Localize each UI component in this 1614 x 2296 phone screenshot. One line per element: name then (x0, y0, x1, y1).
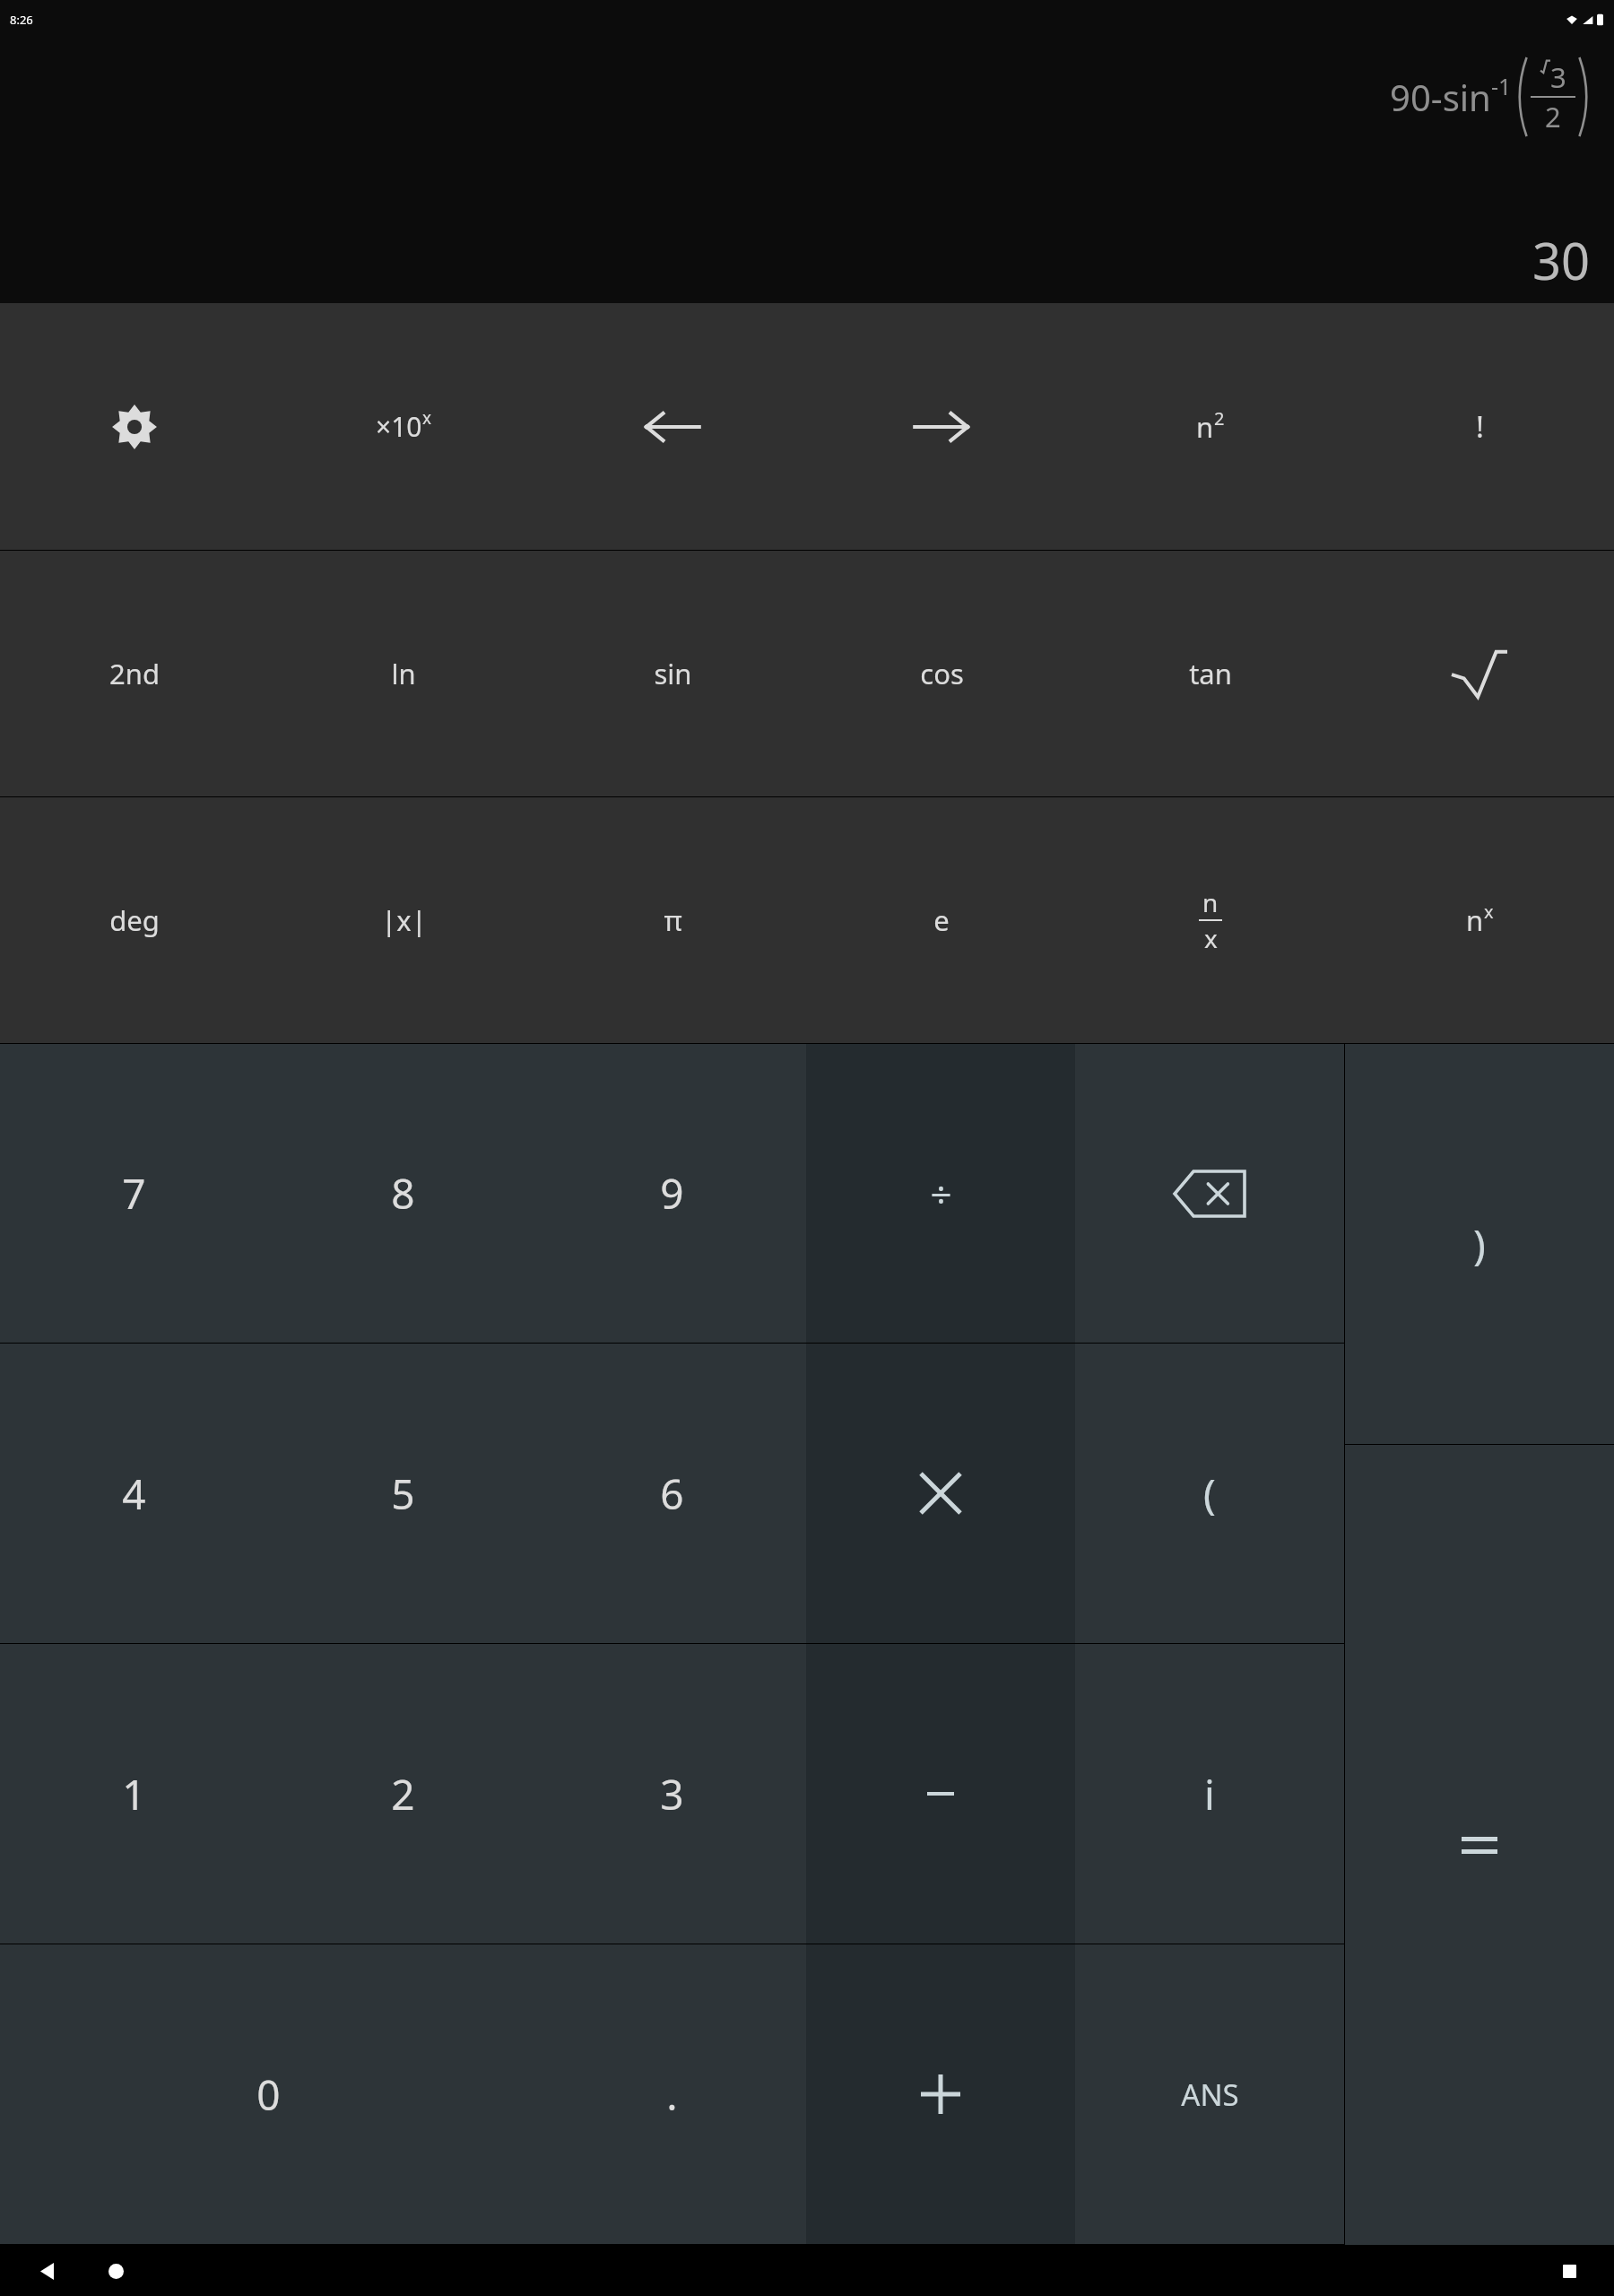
button[interactable]: . (537, 1944, 806, 2244)
button[interactable]: n (1076, 303, 1345, 550)
staticText: ANS (1181, 2074, 1239, 2115)
staticText: 7 (122, 1165, 146, 1222)
button[interactable]: n (1345, 797, 1614, 1043)
button[interactable]: 0 (0, 1944, 537, 2244)
staticText: 5 (391, 1465, 415, 1522)
button[interactable]: ANS (1075, 1944, 1344, 2244)
staticText: x (1484, 900, 1494, 924)
staticText: 0 (256, 2066, 281, 2123)
button[interactable]: ÷ (806, 1044, 1075, 1343)
button[interactable]: |x| (269, 797, 538, 1043)
button[interactable]: 8 (268, 1044, 537, 1343)
button[interactable]: Backspace (1075, 1044, 1344, 1343)
button[interactable]: Equals (1345, 1445, 1614, 2245)
button[interactable]: tan (1076, 551, 1345, 796)
staticText: ln (391, 655, 416, 692)
button[interactable]: 2 (268, 1644, 537, 1944)
staticText: ( (1203, 1465, 1216, 1522)
button[interactable]: ( (1075, 1344, 1344, 1643)
staticText: 3 (660, 1766, 684, 1822)
button[interactable]: deg (0, 797, 269, 1043)
button[interactable]: Plus (806, 1944, 1075, 2244)
staticText: 2 (391, 1766, 415, 1822)
button[interactable]: ! (1345, 303, 1614, 550)
button[interactable]: Move cursor right (807, 303, 1076, 550)
staticText: 2 (1545, 98, 1561, 135)
staticText: 2nd (109, 655, 160, 692)
staticText: 9 (660, 1165, 684, 1222)
button[interactable]: 4 (0, 1344, 268, 1643)
button[interactable]: Recent apps (1554, 2256, 1584, 2286)
button[interactable]: Multiply (806, 1344, 1075, 1643)
staticText: sin (654, 655, 692, 692)
button[interactable]: 2nd (0, 551, 269, 796)
staticText: ×10 (376, 408, 422, 445)
staticText: cos (920, 655, 964, 692)
staticText: 8:26 (10, 12, 33, 28)
staticText: n (1466, 901, 1484, 939)
button[interactable]: ) (1345, 1044, 1614, 1444)
button[interactable]: 3 (537, 1644, 806, 1944)
staticText: ) (1473, 1216, 1486, 1273)
button[interactable]: 9 (537, 1044, 806, 1343)
button[interactable]: 5 (268, 1344, 537, 1643)
staticText: 30 (1532, 226, 1591, 294)
staticText: e (933, 901, 950, 939)
staticText: x (1204, 921, 1218, 955)
button[interactable]: sin (538, 551, 807, 796)
button[interactable]: i (1075, 1644, 1344, 1944)
staticText: |x| (381, 901, 427, 939)
staticText: 90-sin (1390, 73, 1491, 121)
button[interactable]: Minus (806, 1644, 1075, 1944)
staticText: x (422, 406, 432, 430)
staticText: 4 (122, 1465, 146, 1522)
staticText: 3 (1550, 58, 1566, 96)
button[interactable]: e (807, 797, 1076, 1043)
staticText: ÷ (930, 1168, 952, 1219)
button[interactable]: Settings (0, 303, 269, 550)
button[interactable]: cos (807, 551, 1076, 796)
staticText: i (1204, 1766, 1215, 1822)
staticText: 1 (122, 1766, 146, 1822)
button[interactable]: Back (31, 2256, 62, 2286)
button[interactable]: 7 (0, 1044, 268, 1343)
button[interactable]: ln (269, 551, 538, 796)
staticText: -1 (1491, 71, 1512, 101)
staticText: 6 (660, 1465, 684, 1522)
button[interactable]: ×10 (269, 303, 538, 550)
button[interactable]: 1 (0, 1644, 268, 1944)
button[interactable]: Home (100, 2256, 131, 2286)
staticText: 8 (391, 1165, 415, 1222)
staticText: 2 (1214, 406, 1225, 430)
button[interactable]: π (538, 797, 807, 1043)
button[interactable]: Square root (1345, 551, 1614, 796)
button[interactable]: 6 (537, 1344, 806, 1643)
staticText: n (1202, 885, 1219, 919)
staticText: n (1196, 408, 1214, 446)
staticText: tan (1189, 655, 1232, 692)
staticText: . (666, 2066, 678, 2123)
staticText: ! (1476, 406, 1484, 447)
staticText: deg (109, 901, 160, 939)
button[interactable]: n (1076, 797, 1345, 1043)
button[interactable]: Move cursor left (538, 303, 807, 550)
staticText: π (664, 901, 682, 939)
